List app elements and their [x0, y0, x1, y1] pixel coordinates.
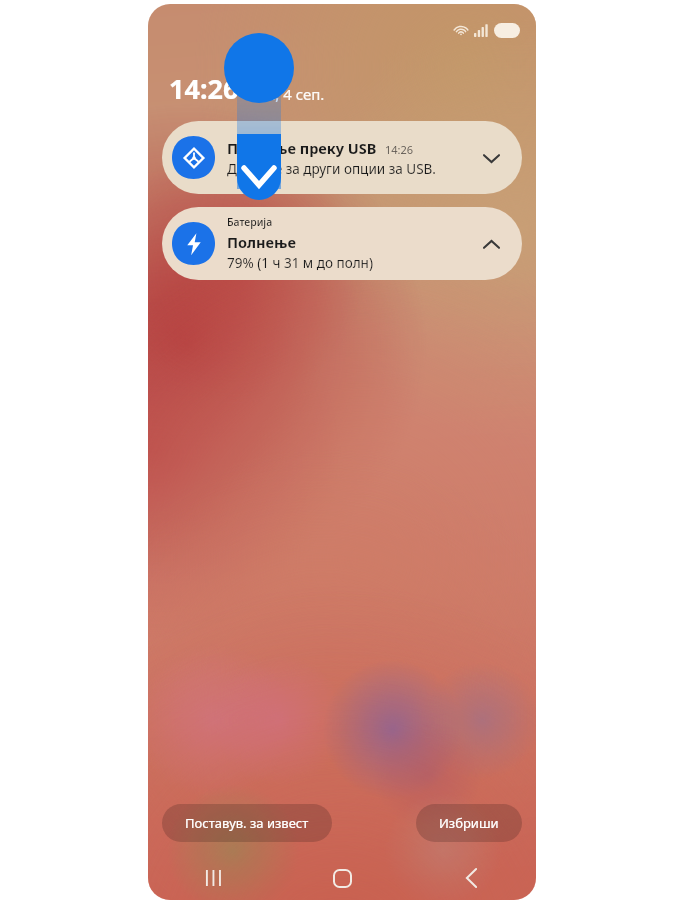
staticText: 14:26 — [385, 142, 414, 157]
button[interactable]: Home — [278, 856, 407, 900]
staticText: 14:26 — [169, 70, 239, 107]
button[interactable]: Полнење преку USB — [162, 121, 522, 194]
button[interactable]: Back — [407, 856, 536, 900]
staticText: Полнење — [227, 232, 296, 252]
staticText: Поставув. за извест — [185, 814, 309, 832]
staticText: 79% (1 ч 31 м до полн) — [227, 254, 373, 272]
button[interactable]: Батерија — [162, 207, 522, 280]
button[interactable]: Поставув. за извест — [162, 804, 332, 842]
staticText: чет., 4 сеп. — [248, 84, 325, 104]
staticText: Батерија — [227, 215, 273, 229]
staticText: Избриши — [439, 814, 499, 832]
button[interactable]: Избриши — [416, 804, 522, 842]
staticText: Полнење преку USB — [227, 138, 377, 158]
button[interactable]: Collapse — [476, 229, 506, 259]
button[interactable]: Expand — [476, 143, 506, 173]
button[interactable]: Recents — [148, 856, 278, 900]
staticText: Допрете за други опции за USB. — [227, 160, 436, 178]
